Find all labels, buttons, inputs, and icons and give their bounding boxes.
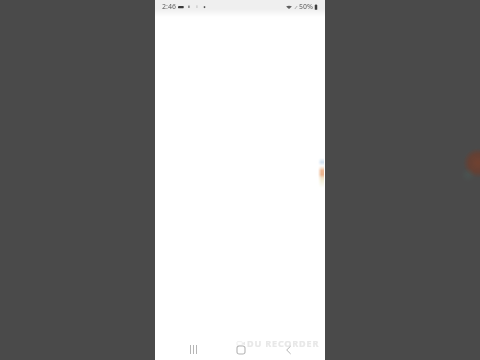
button[interactable]: Recents <box>171 338 215 360</box>
staticText: 50% <box>299 2 313 12</box>
button[interactable]: Home <box>218 338 262 360</box>
button[interactable]: Back <box>267 338 311 360</box>
staticText: 2:46 <box>162 2 176 12</box>
staticText: DU RECORDER <box>247 337 320 349</box>
